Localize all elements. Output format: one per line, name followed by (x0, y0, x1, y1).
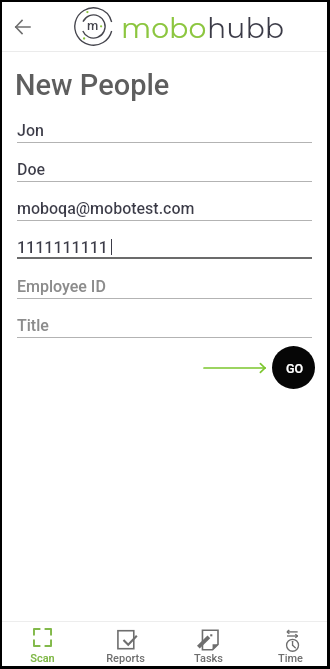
staticText: GO (286, 361, 304, 376)
button[interactable]: GO (272, 346, 315, 389)
staticText: New People (15, 68, 170, 102)
button[interactable]: Reports (83, 622, 166, 666)
staticText: Reports (106, 652, 145, 665)
staticText: hubb (207, 10, 285, 45)
staticText: moboqa@mobotest.com (17, 199, 195, 218)
button[interactable]: Time (249, 622, 329, 666)
button[interactable]: Tasks (166, 622, 249, 666)
staticText: Doe (17, 160, 46, 179)
staticText: Jon (17, 121, 44, 140)
staticText: Title (17, 316, 49, 335)
button[interactable]: Employee ID (17, 260, 312, 299)
staticText: 1111111111 (17, 238, 108, 257)
button[interactable]: moboqa@mobotest.com (17, 182, 312, 221)
staticText: Employee ID (17, 277, 106, 296)
button[interactable]: Jon (17, 104, 312, 143)
button[interactable]: 1111111111 (17, 221, 312, 260)
button[interactable]: Doe (17, 143, 312, 182)
staticText: mobo (121, 10, 207, 45)
button[interactable]: Scan (2, 622, 83, 666)
staticText: Tasks (194, 652, 223, 665)
button[interactable]: Back (2, 7, 42, 47)
button[interactable]: Title (17, 299, 312, 338)
staticText: Time (278, 652, 303, 665)
staticText: Scan (30, 652, 55, 665)
staticText: m (87, 18, 99, 33)
